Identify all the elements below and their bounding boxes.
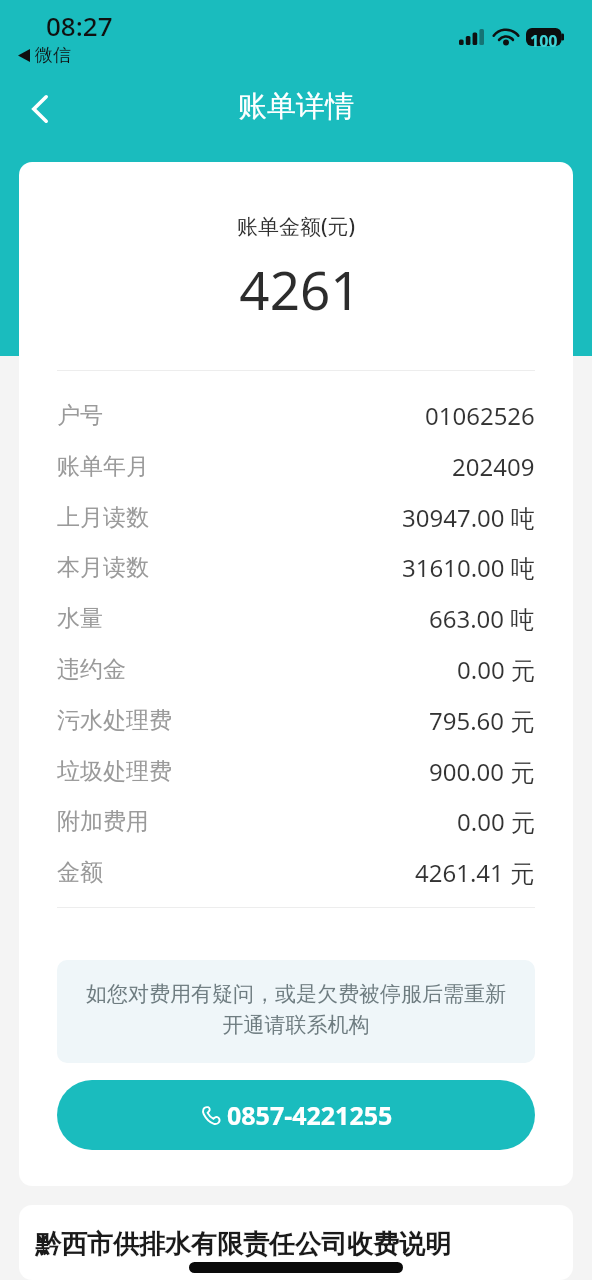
staticText: 垃圾处理费 [57, 757, 172, 786]
button[interactable]: 0857-4221255 [57, 1080, 535, 1150]
staticText: 663.00 吨 [429, 602, 535, 635]
staticText: 如您对费用有疑问，或是欠费被停服后需重新开通请联系机构 [85, 981, 507, 1038]
staticText: 08:27 [46, 8, 113, 43]
button[interactable]: 微信 [18, 44, 71, 67]
staticText: 污水处理费 [57, 706, 172, 735]
staticText: 本月读数 [57, 553, 149, 582]
staticText: 30947.00 吨 [402, 501, 535, 534]
staticText: 795.60 元 [429, 704, 535, 737]
staticText: 4261.41 元 [415, 856, 535, 889]
staticText: 微信 [35, 44, 71, 67]
staticText: 0.00 元 [457, 653, 535, 686]
button[interactable]: Back [17, 86, 63, 132]
staticText: 0.00 元 [457, 805, 535, 838]
staticText: 0857-4221255 [227, 1098, 393, 1132]
staticText: 违约金 [57, 655, 126, 684]
staticText: 金额 [57, 858, 103, 887]
staticText: 账单金额(元) [19, 212, 573, 241]
staticText: 4261 [23, 253, 573, 325]
staticText: 黔西市供排水有限责任公司收费说明 [35, 1228, 451, 1261]
staticText: 31610.00 吨 [402, 551, 535, 584]
staticText: 附加费用 [57, 807, 149, 836]
staticText: 账单年月 [57, 452, 149, 481]
staticText: 水量 [57, 604, 103, 633]
staticText: 100 [530, 30, 558, 52]
staticText: 01062526 [425, 399, 535, 432]
staticText: 户号 [57, 401, 103, 430]
staticText: 202409 [452, 450, 535, 483]
staticText: 上月读数 [57, 503, 149, 532]
staticText: 账单详情 [238, 88, 354, 125]
staticText: 900.00 元 [429, 755, 535, 788]
